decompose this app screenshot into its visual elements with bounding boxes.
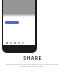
button[interactable] [5, 21, 19, 24]
staticText: SHARE [23, 54, 42, 61]
staticText: Send photos, links and files to any app … [4, 62, 60, 68]
